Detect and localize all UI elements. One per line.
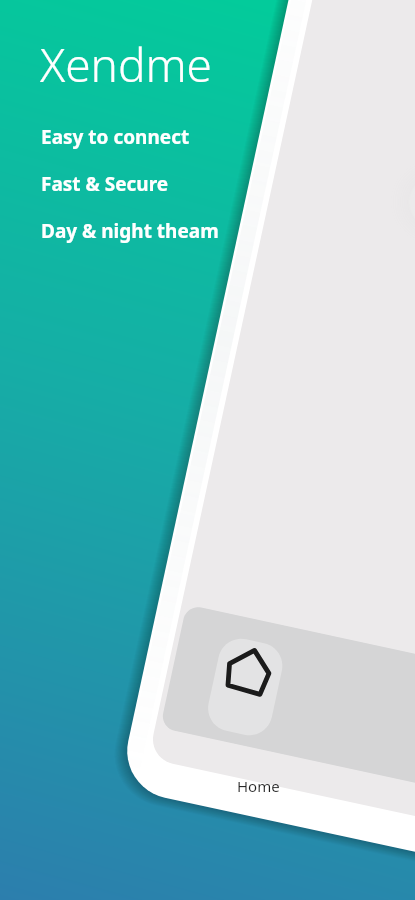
staticText: Xendme [40, 33, 212, 96]
button[interactable]: Home [237, 776, 280, 796]
staticText: Day & night theam [41, 218, 219, 244]
staticText: Easy to connect [41, 124, 190, 150]
staticText: Home [237, 776, 280, 796]
staticText: Fast & Secure [41, 171, 169, 197]
